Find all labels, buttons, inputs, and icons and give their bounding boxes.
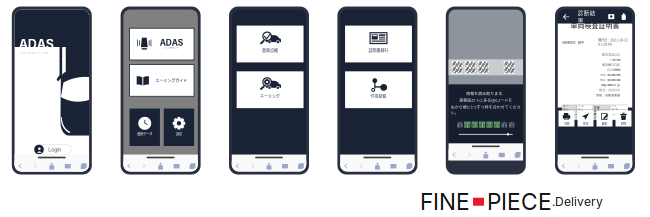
staticText: メーカー (563, 104, 569, 111)
staticText: C A L I B R A T I O N (19, 52, 48, 55)
button[interactable]: Share (48, 162, 56, 170)
button[interactable]: Back (233, 162, 241, 170)
staticText: 車両検査証明書 (570, 20, 619, 30)
button[interactable]: Forward (32, 162, 40, 170)
button[interactable]: Back (16, 162, 24, 170)
staticText: FINE (420, 188, 470, 215)
button[interactable]: Bookmarks (607, 162, 615, 170)
staticText: 左から順に1つずつ枠を合わせてください。 (451, 104, 521, 115)
button[interactable]: Share (157, 162, 165, 170)
staticText: ハリアーズ (611, 104, 618, 111)
button[interactable]: Tabs (80, 162, 88, 170)
button[interactable]: Back (450, 151, 458, 159)
button[interactable]: Back (559, 162, 567, 170)
staticText: 車種 (594, 106, 600, 109)
button[interactable]: Forward (575, 162, 583, 170)
staticText: Login (48, 146, 61, 153)
button[interactable]: Share (621, 13, 626, 20)
staticText: 登録年月 (563, 109, 569, 116)
staticText: .Delivery (552, 194, 603, 209)
staticText: 送信 (582, 121, 588, 126)
staticText: xxx@xxxxx.co.jp (601, 83, 620, 87)
button[interactable]: Share (591, 162, 599, 170)
button[interactable]: Forward (141, 162, 149, 170)
staticText: トヨタ (578, 104, 584, 111)
button[interactable]: Forward (249, 162, 257, 170)
staticText: 設定 (176, 131, 182, 136)
staticText: 作業年月日 (594, 112, 600, 123)
staticText: 車体番号 (594, 109, 600, 116)
staticText: 証明書発行 (368, 47, 388, 53)
button[interactable]: Share (373, 162, 381, 170)
staticText: 東京都〇〇区 (602, 63, 620, 67)
button[interactable]: 証明書発行 (345, 26, 412, 62)
staticText: 一年未満 (578, 109, 584, 116)
button[interactable]: 印刷 (558, 110, 574, 126)
button[interactable]: Back (125, 162, 133, 170)
staticText: ADAS (160, 38, 183, 48)
staticText: 発行日：2021-10-22 07:20:09 (598, 38, 628, 47)
staticText: 〇〇0000000 (607, 68, 620, 72)
button[interactable]: Tabs (623, 162, 631, 170)
staticText: 付帯装備 (370, 93, 386, 99)
button[interactable]: Bookmarks (389, 162, 397, 170)
staticText: 資格：自動車整備 (596, 93, 620, 97)
staticText: 担当：〇〇〇〇 (599, 88, 620, 92)
button[interactable]: エーミング (237, 71, 304, 108)
button[interactable]: 設定 (164, 108, 194, 146)
staticText: エーミング (260, 93, 280, 99)
button[interactable]: 履歴データ (129, 108, 160, 146)
button[interactable]: Forward (357, 162, 365, 170)
button[interactable]: 編集 (596, 110, 612, 126)
staticText: 株式会社〇〇 (602, 53, 620, 56)
button[interactable]: 削除 (615, 110, 631, 126)
staticText: エーミングガイド (155, 77, 187, 83)
button[interactable]: Tabs (297, 162, 305, 170)
staticText: 診断結果 (578, 8, 596, 25)
button[interactable]: ADAS (129, 28, 194, 60)
button[interactable]: Share (265, 162, 273, 170)
button[interactable]: Save (608, 13, 614, 19)
button[interactable]: エーミングガイド (129, 64, 194, 96)
button[interactable]: Forward (466, 151, 474, 159)
button[interactable]: 付帯装備 (345, 71, 412, 108)
button[interactable]: Tabs (514, 151, 522, 159)
staticText: ADAS (19, 36, 54, 52)
staticText: 削除 (620, 121, 626, 126)
staticText: 車検証の下にあるQRコードを (459, 97, 512, 103)
staticText: TEL: 000-0000-0000 (600, 73, 620, 77)
staticText: 編集 (601, 121, 607, 126)
button[interactable]: Tabs (405, 162, 413, 170)
button[interactable]: Login (37, 145, 71, 154)
button[interactable]: Bookmarks (173, 162, 181, 170)
staticText: 印刷 (563, 121, 569, 126)
staticText: CALIBRATION (164, 46, 179, 49)
staticText: 履歴データ (137, 131, 152, 136)
staticText: 走行距離 (563, 114, 569, 121)
staticText: 〒000-0000 (609, 58, 620, 62)
button[interactable]: Bookmarks (281, 162, 289, 170)
button[interactable]: Back (563, 13, 570, 20)
staticText: FAX: 000-0000-0000 (600, 78, 620, 82)
staticText: 車両点検 (262, 47, 278, 53)
button[interactable]: Back (341, 162, 349, 170)
button[interactable]: Bookmarks (64, 162, 72, 170)
staticText: A商事会社 御中 (562, 40, 584, 45)
staticText: 情報を読み取ります。 (466, 90, 505, 96)
button[interactable]: Share (482, 151, 490, 159)
staticText: PIECE (487, 188, 552, 215)
button[interactable]: Tabs (189, 162, 197, 170)
button[interactable]: 送信 (577, 110, 593, 126)
button[interactable]: Bookmarks (498, 151, 506, 159)
button[interactable]: 車両点検 (237, 26, 304, 62)
